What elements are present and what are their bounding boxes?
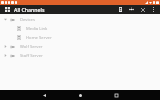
button[interactable]: More options <box>148 5 159 14</box>
button[interactable]: Close <box>137 5 148 14</box>
button[interactable]: Devices <box>0 15 160 24</box>
staticText: Devices <box>20 17 35 23</box>
button[interactable]: Back <box>36 90 52 100</box>
button[interactable]: Recent apps <box>108 90 124 100</box>
button[interactable]: Storage <box>115 5 126 14</box>
button[interactable]: Home Server <box>0 33 160 42</box>
button[interactable]: Staff Server <box>0 51 160 60</box>
button[interactable]: Network <box>126 5 137 14</box>
button[interactable]: Wolf Server <box>0 42 160 51</box>
button[interactable]: Media Link <box>0 24 160 33</box>
staticText: Media Link <box>26 26 48 32</box>
staticText: Home Server <box>26 35 52 41</box>
staticText: All Channels <box>14 6 115 13</box>
button[interactable]: Open navigation drawer <box>0 5 14 14</box>
staticText: Wolf Server <box>20 44 43 50</box>
button[interactable]: Home <box>72 90 88 100</box>
staticText: Staff Server <box>20 53 43 59</box>
